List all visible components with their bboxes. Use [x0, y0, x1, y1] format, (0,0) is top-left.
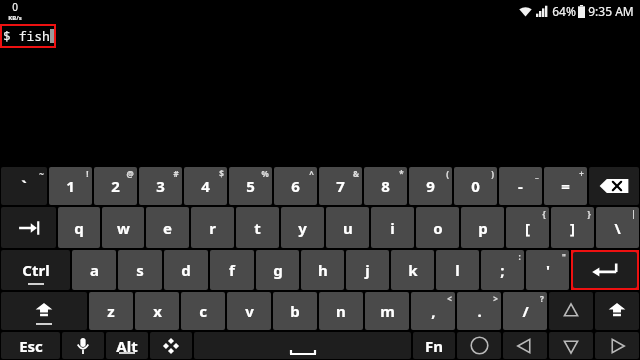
button[interactable]: 1: [49, 167, 92, 205]
staticText: ~: [39, 168, 44, 179]
button[interactable]: `: [1, 167, 47, 205]
staticText: Ctrl: [22, 260, 50, 280]
staticText: 0: [12, 0, 18, 14]
button[interactable]: Ctrl: [1, 250, 70, 290]
button[interactable]: Enter: [573, 252, 637, 288]
button[interactable]: Fn: [413, 332, 455, 359]
button[interactable]: a: [72, 250, 116, 290]
button[interactable]: \: [596, 207, 639, 248]
button[interactable]: /: [503, 292, 547, 330]
button[interactable]: 7: [319, 167, 362, 205]
button[interactable]: Space: [194, 332, 411, 359]
staticText: ]: [570, 218, 575, 238]
button[interactable]: s: [118, 250, 162, 290]
button[interactable]: g: [256, 250, 299, 290]
button[interactable]: Switch language: [150, 332, 192, 359]
button[interactable]: l: [436, 250, 479, 290]
button[interactable]: Right: [595, 332, 639, 359]
button[interactable]: i: [371, 207, 414, 248]
button[interactable]: [: [506, 207, 549, 248]
button[interactable]: 4: [184, 167, 227, 205]
button[interactable]: p: [461, 207, 504, 248]
button[interactable]: ]: [551, 207, 594, 248]
staticText: KB/s: [8, 14, 22, 22]
button[interactable]: v: [227, 292, 271, 330]
button[interactable]: Left: [503, 332, 547, 359]
button[interactable]: 9: [409, 167, 452, 205]
button[interactable]: t: [236, 207, 279, 248]
button[interactable]: z: [89, 292, 133, 330]
button[interactable]: u: [326, 207, 369, 248]
button[interactable]: 6: [274, 167, 317, 205]
button[interactable]: e: [146, 207, 189, 248]
button[interactable]: Shift: [1, 292, 87, 330]
button[interactable]: d: [164, 250, 208, 290]
button[interactable]: Backspace: [589, 167, 639, 205]
staticText: 9:35 AM: [588, 3, 634, 19]
staticText: s: [136, 260, 144, 280]
staticText: Alt: [116, 336, 138, 356]
staticText: 6: [291, 176, 300, 196]
staticText: t: [254, 218, 261, 238]
button[interactable]: Home: [457, 332, 501, 359]
staticText: 9: [426, 176, 435, 196]
button[interactable]: o: [416, 207, 459, 248]
staticText: ,: [431, 301, 436, 321]
button[interactable]: c: [181, 292, 225, 330]
staticText: 3: [156, 176, 165, 196]
button[interactable]: f: [210, 250, 254, 290]
staticText: z: [107, 301, 115, 321]
button[interactable]: Alt: [106, 332, 148, 359]
staticText: %: [261, 168, 269, 179]
staticText: 7: [336, 176, 345, 196]
button[interactable]: x: [135, 292, 179, 330]
staticText: 2: [111, 176, 120, 196]
button[interactable]: w: [102, 207, 144, 248]
staticText: w: [117, 218, 130, 238]
staticText: g: [273, 260, 283, 280]
button[interactable]: =: [544, 167, 587, 205]
button[interactable]: b: [273, 292, 317, 330]
button[interactable]: r: [191, 207, 234, 248]
button[interactable]: 5: [229, 167, 272, 205]
button[interactable]: m: [365, 292, 409, 330]
button[interactable]: ,: [411, 292, 455, 330]
staticText: $ fish: [3, 27, 50, 45]
staticText: n: [336, 301, 346, 321]
button[interactable]: k: [391, 250, 434, 290]
staticText: 8: [381, 176, 390, 196]
button[interactable]: Up: [549, 292, 593, 330]
button[interactable]: -: [499, 167, 542, 205]
button[interactable]: j: [346, 250, 389, 290]
staticText: ": [562, 251, 566, 262]
button[interactable]: ': [526, 250, 569, 290]
staticText: e: [163, 218, 172, 238]
staticText: j: [365, 260, 370, 280]
button[interactable]: q: [58, 207, 100, 248]
button[interactable]: 8: [364, 167, 407, 205]
staticText: !: [86, 168, 89, 179]
button[interactable]: 2: [94, 167, 137, 205]
button[interactable]: Voice input: [62, 332, 104, 359]
button[interactable]: Shift: [595, 292, 639, 330]
button[interactable]: .: [457, 292, 501, 330]
staticText: ?: [540, 293, 544, 304]
staticText: l: [455, 260, 460, 280]
button[interactable]: h: [301, 250, 344, 290]
staticText: *: [399, 168, 404, 179]
button[interactable]: ;: [481, 250, 524, 290]
staticText: o: [433, 218, 443, 238]
staticText: f: [229, 260, 235, 280]
button[interactable]: Tab: [1, 207, 56, 248]
button[interactable]: y: [281, 207, 324, 248]
button[interactable]: Esc: [1, 332, 60, 359]
staticText: <: [447, 293, 452, 304]
staticText: ': [546, 260, 550, 280]
staticText: ): [491, 168, 494, 179]
button[interactable]: n: [319, 292, 363, 330]
staticText: +: [579, 168, 584, 179]
button[interactable]: 3: [139, 167, 182, 205]
staticText: 0: [471, 176, 480, 196]
button[interactable]: 0: [454, 167, 497, 205]
button[interactable]: Down: [549, 332, 593, 359]
